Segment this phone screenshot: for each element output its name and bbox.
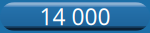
staticText: 14 000 xyxy=(39,1,110,31)
